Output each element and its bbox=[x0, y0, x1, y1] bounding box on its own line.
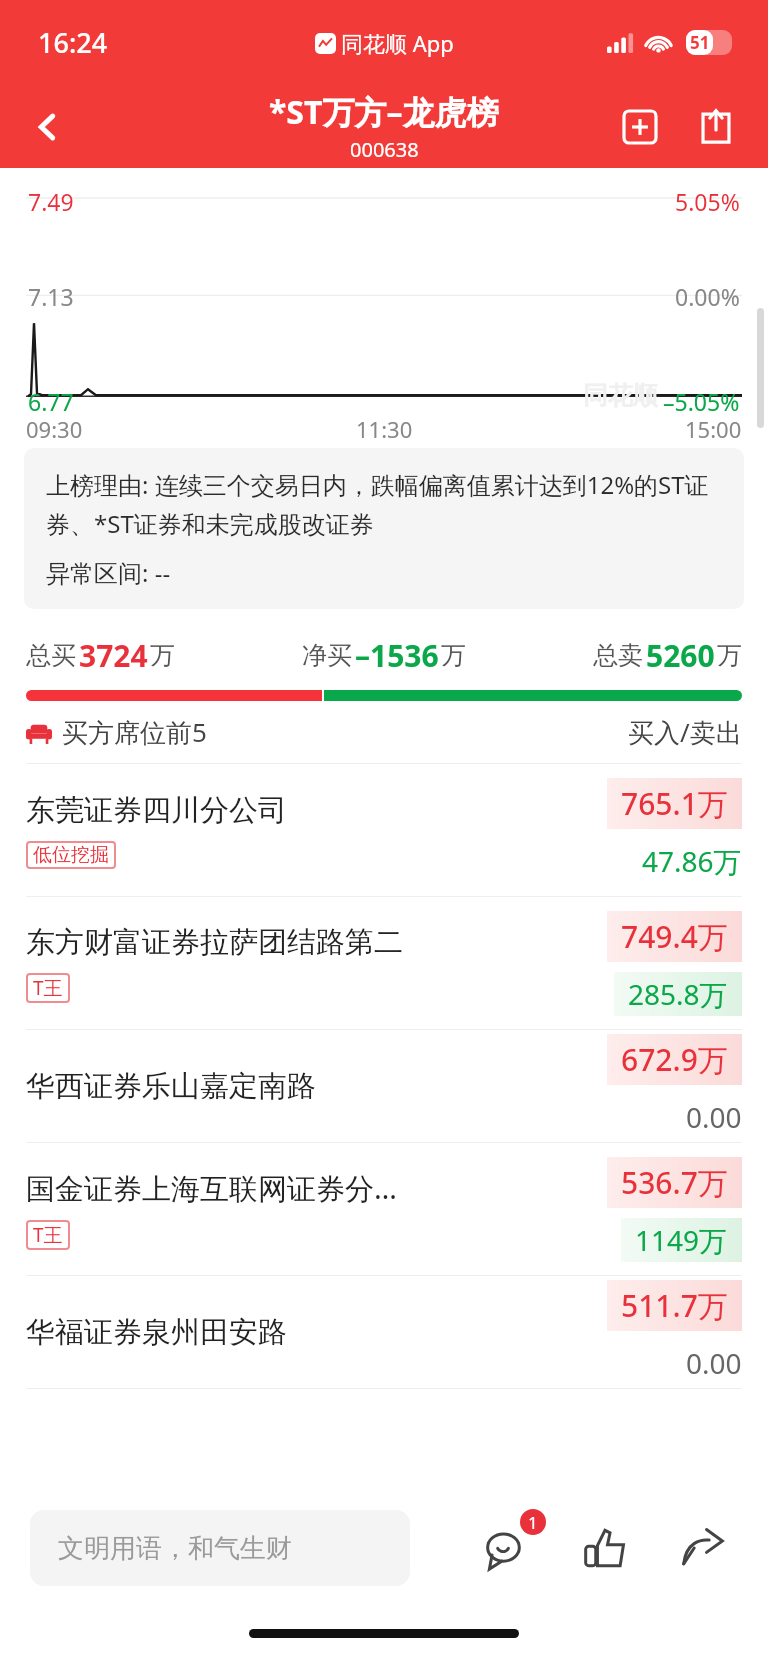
staticText: 000638 bbox=[350, 136, 419, 163]
staticText: 7.13 bbox=[28, 281, 74, 312]
staticText: 1 bbox=[528, 1511, 538, 1534]
staticText: 0.00 bbox=[686, 1344, 742, 1382]
staticText: 51 bbox=[690, 31, 710, 54]
staticText: 765.1万 bbox=[621, 783, 728, 824]
button[interactable]: 东方财富证券拉萨团结路第二 bbox=[0, 897, 768, 1029]
button[interactable]: 东莞证券四川分公司 bbox=[0, 764, 768, 896]
staticText: 672.9万 bbox=[621, 1039, 728, 1080]
staticText: 同花顺 bbox=[583, 380, 658, 411]
staticText: T王 bbox=[33, 975, 63, 1001]
staticText: 15:00 bbox=[685, 414, 742, 444]
staticText: 买入/卖出 bbox=[628, 714, 742, 750]
staticText: 万 bbox=[717, 640, 742, 671]
staticText: 749.4万 bbox=[621, 916, 728, 957]
staticText: 6.77 bbox=[28, 386, 74, 417]
staticText: 7.49 bbox=[28, 186, 74, 217]
staticText: 华西证券乐山嘉定南路 bbox=[26, 1068, 316, 1105]
staticText: 异常区间: -- bbox=[46, 556, 171, 589]
button[interactable]: 华西证券乐山嘉定南路 bbox=[0, 1030, 768, 1142]
button[interactable]: Like bbox=[570, 1513, 640, 1583]
staticText: 16:24 bbox=[38, 24, 108, 61]
staticText: 536.7万 bbox=[621, 1162, 728, 1203]
staticText: 09:30 bbox=[26, 414, 83, 444]
staticText: T王 bbox=[33, 1222, 63, 1248]
staticText: 总卖 bbox=[593, 640, 643, 671]
staticText: 同花顺 App bbox=[341, 28, 454, 58]
staticText: 1149万 bbox=[635, 1221, 728, 1259]
button[interactable]: Share bbox=[686, 97, 746, 157]
staticText: 文明用语，和气生财 bbox=[58, 1532, 292, 1565]
staticText: –5.05% bbox=[663, 386, 740, 417]
staticText: 总买 bbox=[26, 640, 76, 671]
staticText: 万 bbox=[441, 640, 466, 671]
staticText: 47.86万 bbox=[642, 842, 742, 880]
button[interactable]: 文明用语，和气生财 bbox=[30, 1510, 410, 1586]
button[interactable]: Comments bbox=[472, 1513, 542, 1583]
button[interactable]: Back bbox=[18, 97, 78, 157]
button[interactable]: 华福证券泉州田安路 bbox=[0, 1276, 768, 1388]
staticText: 5.05% bbox=[675, 186, 740, 217]
staticText: 买方席位前5 bbox=[62, 714, 207, 750]
staticText: 11:30 bbox=[356, 414, 413, 444]
staticText: 东莞证券四川分公司 bbox=[26, 792, 287, 829]
button[interactable]: Share bbox=[668, 1513, 738, 1583]
staticText: 0.00 bbox=[686, 1098, 742, 1136]
button[interactable]: Add bbox=[610, 97, 670, 157]
staticText: 华福证券泉州田安路 bbox=[26, 1314, 287, 1351]
staticText: 285.8万 bbox=[628, 975, 728, 1013]
staticText: 国金证券上海互联网证券分… bbox=[26, 1168, 397, 1208]
staticText: *ST万方–龙虎榜 bbox=[269, 90, 499, 134]
staticText: –1536 bbox=[355, 635, 439, 676]
button[interactable]: 国金证券上海互联网证券分… bbox=[0, 1143, 768, 1275]
staticText: 511.7万 bbox=[621, 1285, 728, 1326]
staticText: 5260 bbox=[646, 635, 715, 676]
staticText: 东方财富证券拉萨团结路第二 bbox=[26, 924, 403, 961]
staticText: 低位挖掘 bbox=[33, 843, 109, 867]
staticText: 净买 bbox=[302, 640, 352, 671]
staticText: 3724 bbox=[79, 635, 148, 676]
staticText: 0.00% bbox=[675, 281, 740, 312]
staticText: 上榜理由: 连续三个交易日内，跌幅偏离值累计达到12%的ST证券、*ST证券和未… bbox=[46, 468, 722, 540]
staticText: 万 bbox=[150, 640, 175, 671]
